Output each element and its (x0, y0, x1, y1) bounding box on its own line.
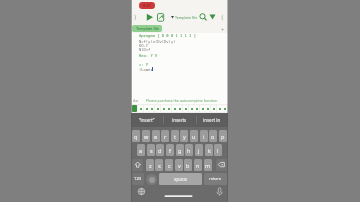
button[interactable]: w (142, 130, 150, 142)
staticText: l (217, 147, 219, 154)
button[interactable] (132, 105, 137, 112)
button[interactable]: 0:41 (139, 2, 155, 9)
staticText: N(D=f (139, 47, 151, 52)
button[interactable]: e (152, 130, 160, 142)
staticText: + (221, 26, 225, 34)
staticText: inserts (172, 117, 187, 123)
staticText: “insert” (139, 117, 155, 123)
button[interactable]: insert in (196, 113, 228, 127)
staticText: x (158, 162, 161, 169)
button[interactable] (222, 105, 227, 112)
staticText: w (144, 133, 149, 140)
staticText: =: Y (139, 62, 149, 67)
staticText: a (139, 147, 143, 154)
staticText: t (174, 133, 176, 140)
button[interactable]: k (205, 144, 213, 156)
button[interactable]: 123 (132, 173, 144, 185)
staticText: k (208, 147, 211, 154)
staticText: 123 (134, 176, 142, 182)
button[interactable]: u (190, 130, 198, 142)
staticText: m (205, 162, 211, 169)
button[interactable]: s (147, 144, 155, 156)
staticText: (Lower (139, 67, 153, 72)
button[interactable]: j (195, 144, 203, 156)
button[interactable]: q (132, 130, 140, 142)
staticText: b (186, 162, 190, 169)
button[interactable] (217, 105, 222, 112)
staticText: f (169, 147, 171, 154)
staticText: KO-Y (139, 43, 149, 48)
staticText: r (164, 133, 167, 140)
button[interactable]: v (175, 159, 183, 171)
button[interactable] (149, 105, 154, 112)
staticText: o (211, 133, 215, 140)
button[interactable]: m (204, 159, 212, 171)
button[interactable]: h (185, 144, 193, 156)
button[interactable]: a (137, 144, 145, 156)
staticText: Template file (175, 15, 198, 20)
staticText: q (134, 133, 138, 140)
staticText: Aa (133, 98, 139, 104)
staticText: h (187, 147, 191, 154)
button[interactable] (189, 105, 194, 112)
staticText: #pragma [ 0 0 0 1 1 1 1 ] (139, 33, 196, 38)
staticText: j (198, 147, 200, 154)
button[interactable]: Template file (132, 25, 162, 32)
staticText: return (209, 176, 222, 182)
button[interactable]: n (194, 159, 202, 171)
staticText: s (150, 147, 153, 154)
button[interactable]: “insert” (131, 113, 163, 127)
staticText: Please purchase the autocomplete functio… (146, 98, 218, 103)
button[interactable]: c (165, 159, 173, 171)
button[interactable]: z (146, 159, 154, 171)
button[interactable]: o (209, 130, 217, 142)
button[interactable]: p (219, 130, 227, 142)
button[interactable] (200, 105, 205, 112)
button[interactable] (132, 159, 143, 171)
button[interactable]: i (200, 130, 208, 142)
staticText: 0:41 (143, 3, 151, 8)
button[interactable] (146, 174, 157, 185)
staticText: u (192, 133, 196, 140)
staticText: space (174, 176, 187, 183)
button[interactable]: return (204, 173, 227, 185)
staticText: Template file (136, 26, 159, 31)
button[interactable]: space (159, 173, 202, 185)
button[interactable]: l (214, 144, 222, 156)
staticText: g (178, 147, 182, 154)
staticText: e (154, 133, 158, 140)
button[interactable]: f (166, 144, 174, 156)
button[interactable]: d (156, 144, 164, 156)
button[interactable] (172, 105, 177, 112)
button[interactable]: b (184, 159, 192, 171)
staticText: z (149, 162, 152, 169)
button[interactable] (144, 105, 149, 112)
button[interactable] (177, 105, 182, 112)
button[interactable]: g (176, 144, 184, 156)
button[interactable]: x (155, 159, 163, 171)
button[interactable] (161, 105, 166, 112)
staticText: n (196, 162, 200, 169)
staticText: insert in (203, 117, 221, 123)
staticText: p (221, 133, 225, 140)
button[interactable]: r (161, 130, 169, 142)
staticText: Hex: Y V (139, 53, 158, 58)
button[interactable] (194, 105, 199, 112)
button[interactable]: y (180, 130, 188, 142)
button[interactable] (138, 105, 143, 112)
button[interactable] (155, 105, 160, 112)
button[interactable] (216, 159, 227, 171)
staticText: v (178, 162, 181, 169)
button[interactable] (211, 105, 216, 112)
staticText: d (158, 147, 162, 154)
button[interactable] (205, 105, 210, 112)
button[interactable]: inserts (164, 113, 195, 127)
staticText: y (183, 133, 186, 140)
button[interactable]: t (171, 130, 179, 142)
staticText: i (203, 133, 205, 140)
button[interactable] (183, 105, 188, 112)
staticText: N=f(y(x(Dv(Dv)y) (139, 39, 176, 44)
button[interactable] (166, 105, 171, 112)
staticText: c (168, 162, 171, 169)
